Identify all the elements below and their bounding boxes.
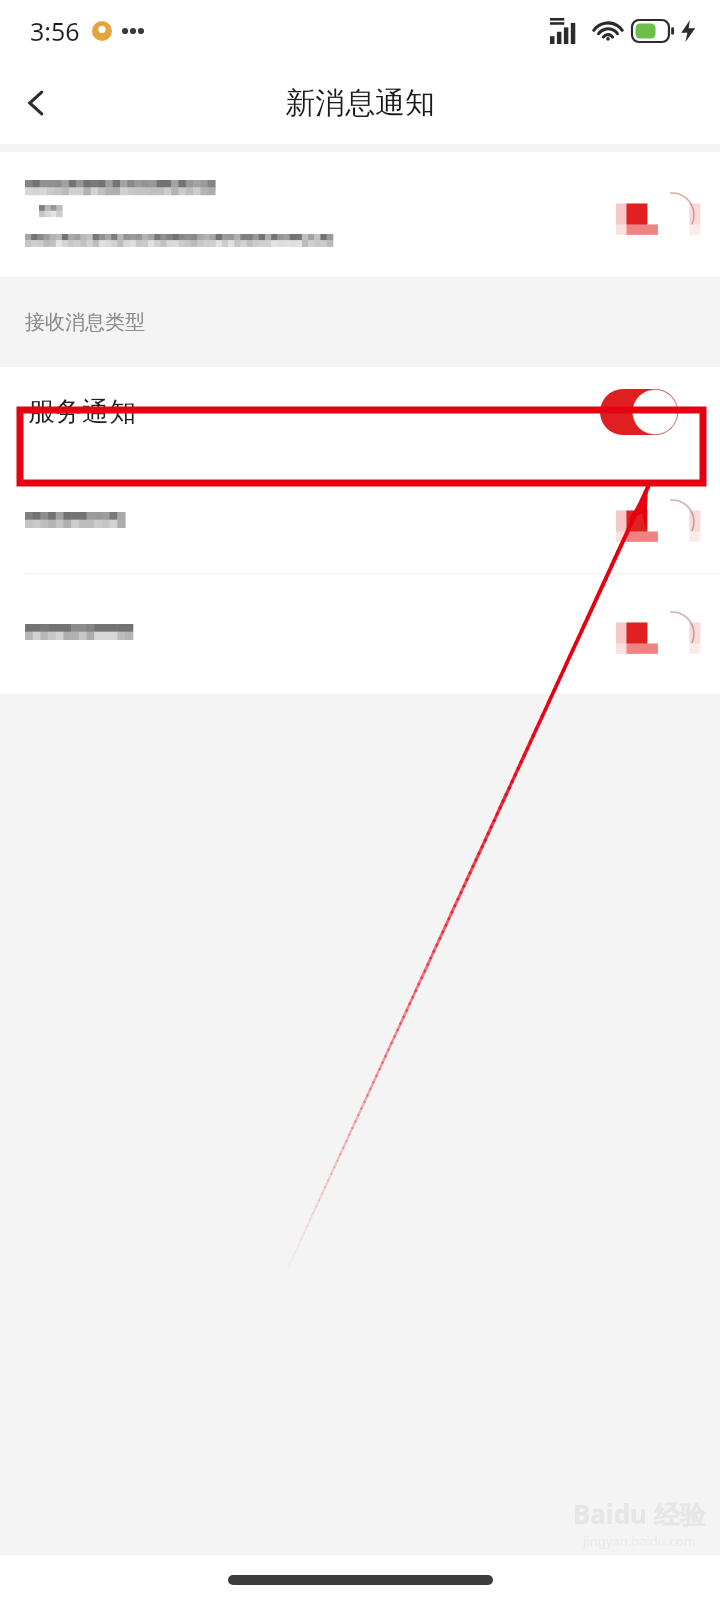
staticText: 新消息通知: [285, 84, 435, 122]
staticText: 服务通知: [28, 395, 136, 429]
button[interactable]: 服务通知: [0, 367, 720, 469]
staticText: 3:56: [30, 14, 80, 48]
button[interactable]: [0, 469, 720, 574]
staticText: jingyan.baidu.com: [583, 1532, 696, 1550]
button[interactable]: 返回: [0, 67, 72, 139]
button[interactable]: [0, 574, 720, 694]
staticText: 接收消息类型: [25, 310, 145, 335]
button[interactable]: [0, 152, 720, 277]
button[interactable]: 服务通知开关: [600, 389, 678, 435]
staticText: Baidu 经验: [573, 1496, 706, 1532]
